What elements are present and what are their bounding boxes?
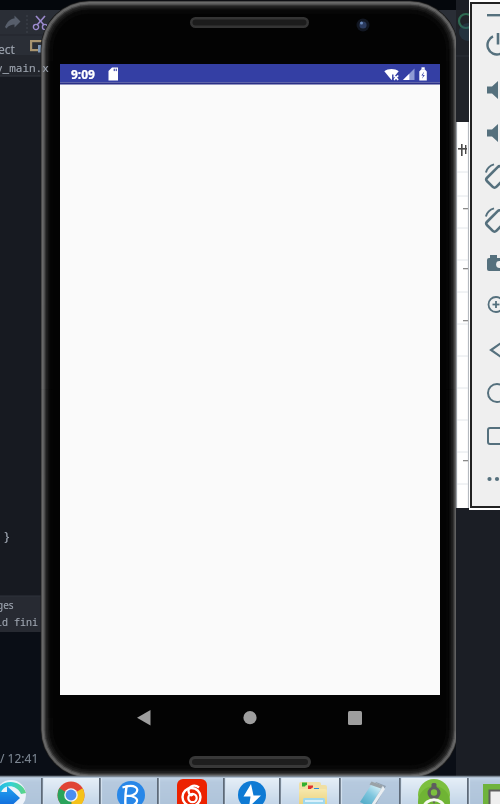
button[interactable]: Power <box>472 30 500 70</box>
button[interactable]: Home <box>216 697 284 737</box>
button[interactable]: Thunder <box>225 778 281 804</box>
button[interactable]: Rotate right <box>472 203 500 243</box>
button[interactable]: Internet Explorer <box>0 778 56 804</box>
button[interactable]: Notepad <box>341 778 397 804</box>
button[interactable]: File Explorer <box>281 778 337 804</box>
button[interactable]: Close emulator panel <box>472 4 500 44</box>
staticText: / 12:41 <box>0 750 39 766</box>
button[interactable]: Home <box>472 375 500 415</box>
staticText: ld fini <box>0 615 38 629</box>
staticText: ges <box>0 598 14 612</box>
button[interactable]: Zoom <box>472 289 500 329</box>
staticText: y_main.x <box>0 60 49 75</box>
button[interactable]: Android emulator <box>469 778 500 804</box>
staticText: ect <box>0 41 15 57</box>
button[interactable]: Volume up <box>472 74 500 114</box>
button[interactable]: Google Chrome <box>43 778 99 804</box>
staticText: 9:09 <box>71 66 95 82</box>
button[interactable]: Android Studio <box>401 778 457 804</box>
button[interactable]: NetEase Music <box>159 778 215 804</box>
button[interactable]: Volume down <box>472 117 500 157</box>
button[interactable]: Overview <box>472 412 500 452</box>
button[interactable]: Back <box>110 697 188 737</box>
button[interactable]: Baidu <box>101 778 157 804</box>
staticText: } <box>3 527 11 545</box>
button[interactable]: Take screenshot <box>472 246 500 286</box>
button[interactable]: More <box>472 460 500 500</box>
button[interactable]: Rotate left <box>472 160 500 200</box>
button[interactable]: Recent apps <box>320 697 390 737</box>
button[interactable]: Back <box>472 332 500 372</box>
